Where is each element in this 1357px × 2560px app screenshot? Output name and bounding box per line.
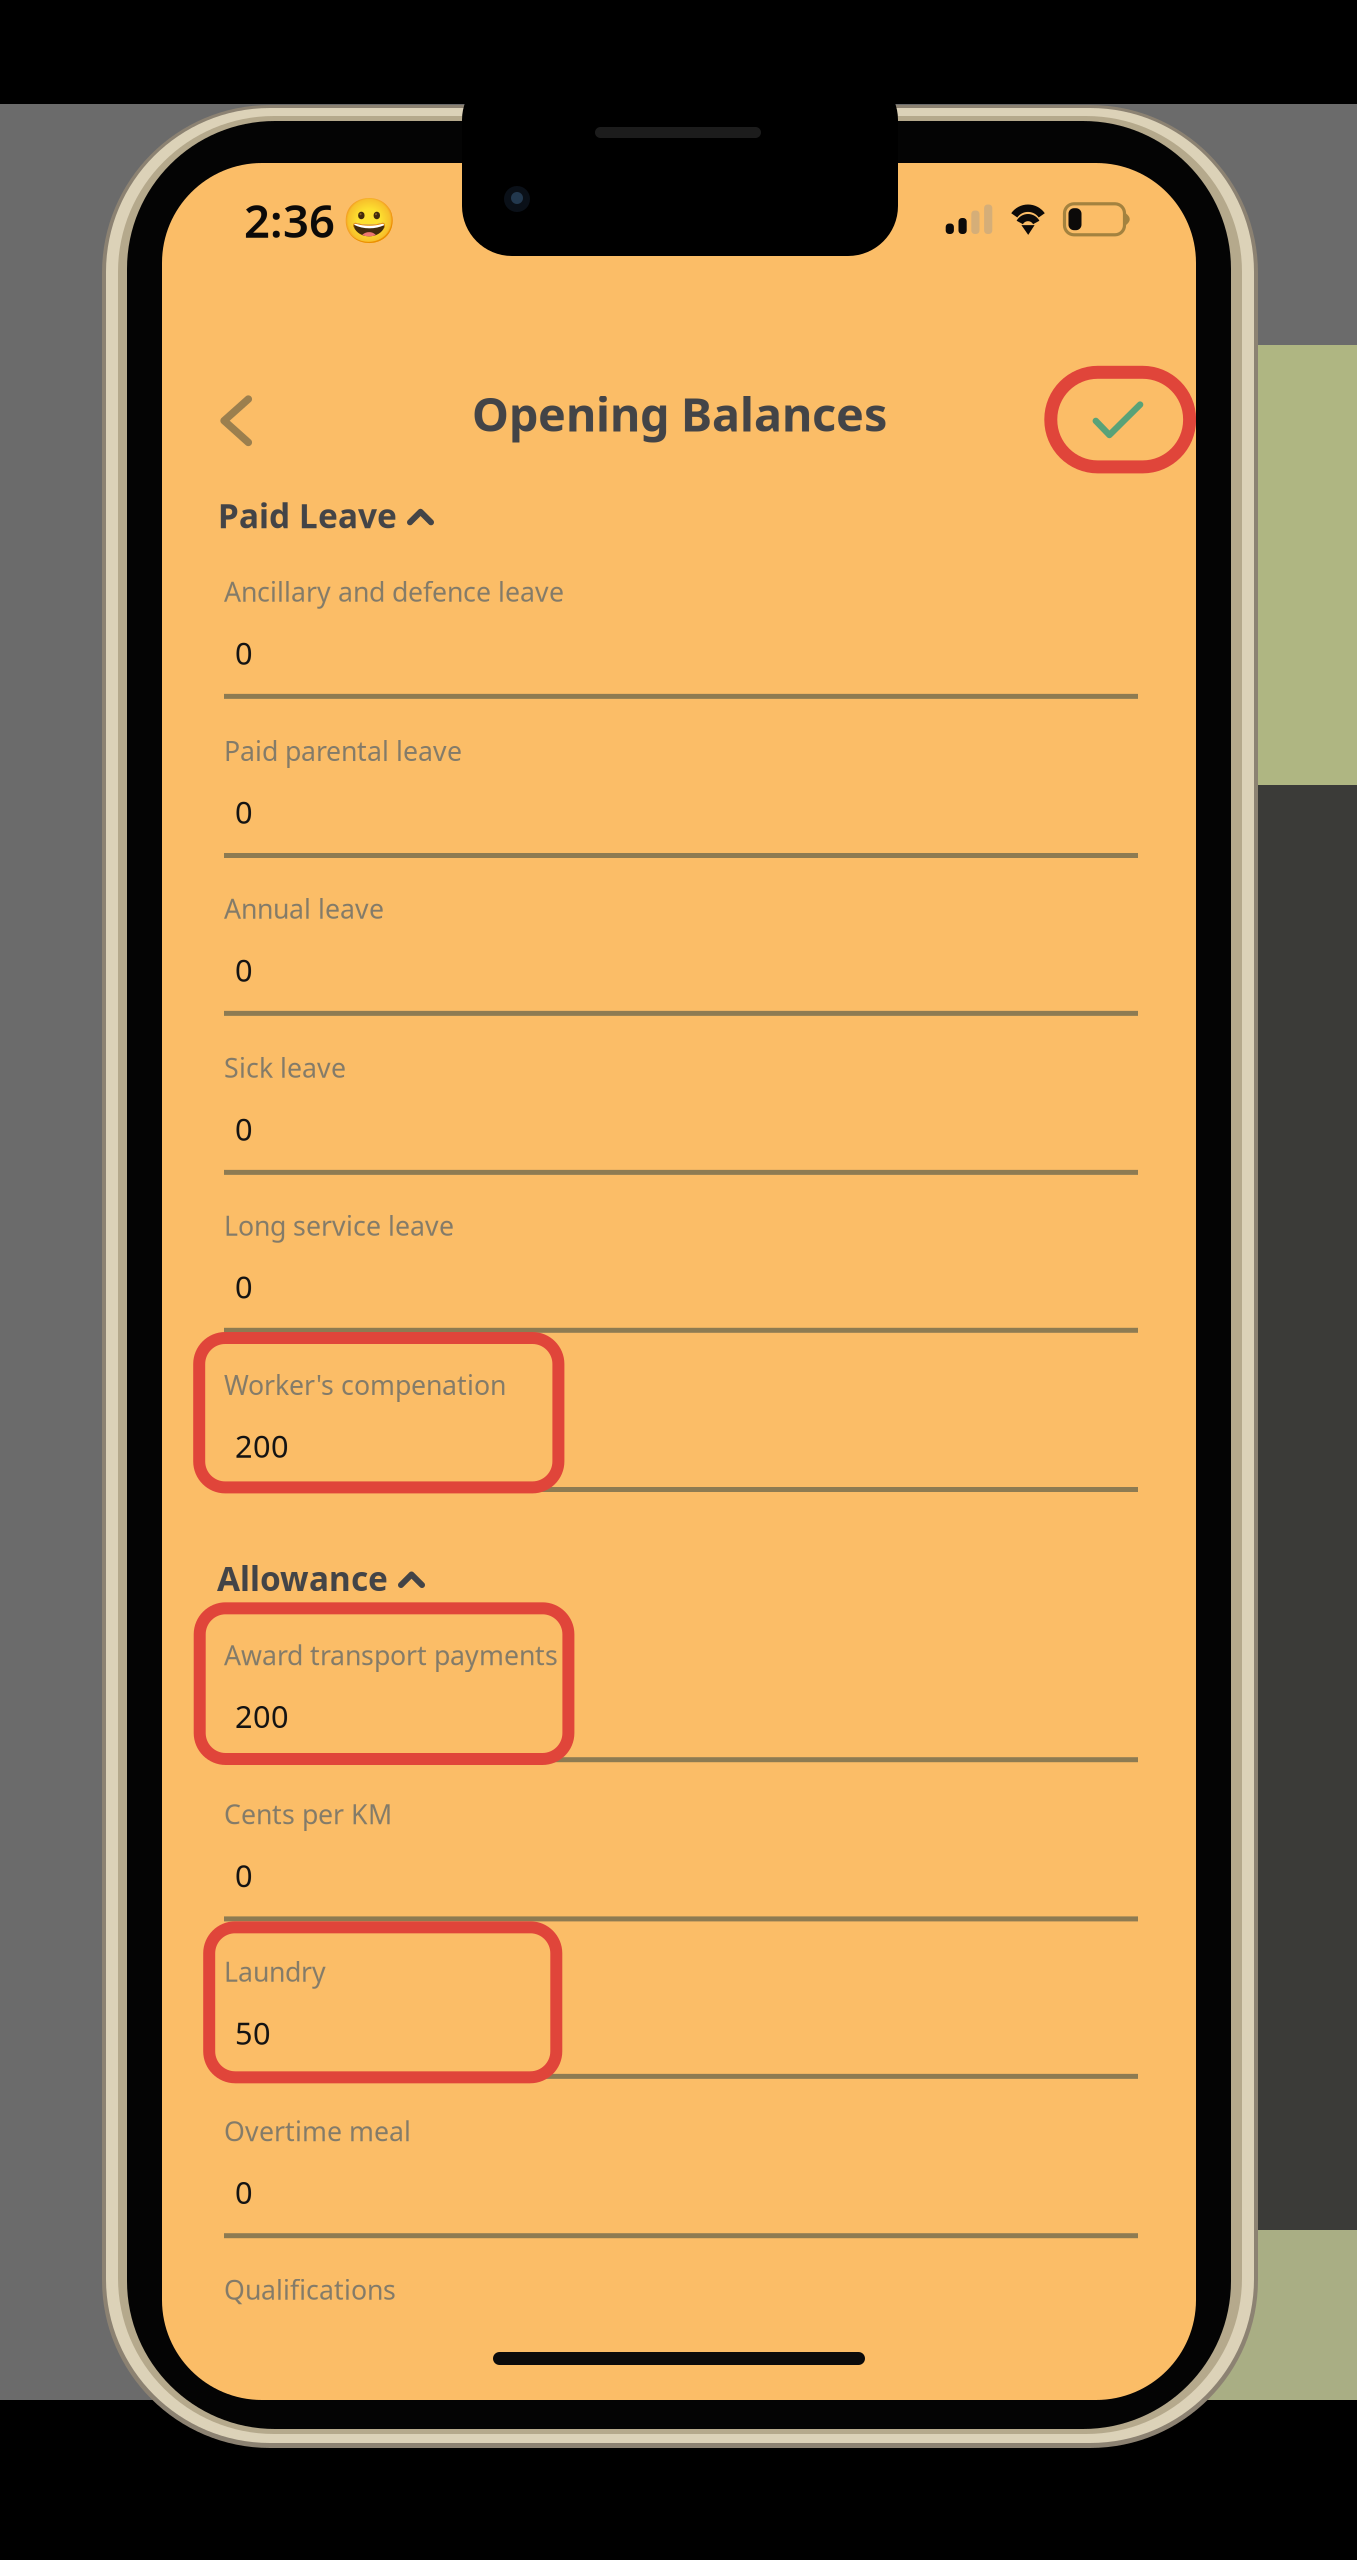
staticText: 50 [235, 2012, 271, 2053]
staticText: 200 [235, 1696, 289, 1736]
button[interactable]: Save [1044, 365, 1196, 475]
staticText: 0 [235, 1855, 253, 1896]
button[interactable]: Laundry [224, 1918, 1138, 2076]
staticText: Allowance [217, 1556, 388, 1600]
button[interactable]: Annual leave [224, 855, 1138, 1013]
button[interactable]: Award transport payments [224, 1601, 1138, 1760]
button[interactable]: Ancillary and defence leave [224, 538, 1138, 696]
button[interactable]: Overtime meal [224, 2077, 1138, 2236]
staticText: 0 [235, 632, 253, 673]
staticText: Sick leave [224, 1050, 346, 1085]
button[interactable]: Allowance [217, 1556, 425, 1600]
button[interactable]: Cents per KM [224, 1760, 1138, 1919]
staticText: 2:36 [244, 190, 335, 250]
button[interactable]: Paid parental leave [224, 697, 1138, 855]
staticText: Paid Leave [218, 493, 397, 538]
staticText: 😀 [342, 196, 397, 246]
button[interactable]: Back [220, 370, 324, 474]
staticText: Worker's compenation [224, 1367, 506, 1402]
staticText: Award transport payments [224, 1637, 558, 1672]
staticText: 0 [235, 1108, 253, 1149]
staticText: 0 [235, 1266, 253, 1307]
button[interactable]: Worker's compenation [224, 1331, 1138, 1489]
staticText: Paid parental leave [224, 733, 462, 768]
button[interactable]: Long service leave [224, 1172, 1138, 1330]
staticText: Qualifications [224, 2272, 396, 2307]
button[interactable]: Sick leave [224, 1014, 1138, 1172]
staticText: Overtime meal [224, 2113, 411, 2148]
staticText: Laundry [224, 1954, 326, 1989]
staticText: 0 [235, 2172, 253, 2212]
button[interactable]: Paid Leave [218, 493, 434, 538]
staticText: Annual leave [224, 891, 384, 926]
staticText: Ancillary and defence leave [224, 574, 564, 609]
staticText: Long service leave [224, 1208, 454, 1243]
staticText: Cents per KM [224, 1796, 392, 1832]
staticText: Opening Balances [472, 382, 887, 444]
staticText: 0 [235, 949, 253, 990]
staticText: 0 [235, 791, 253, 832]
staticText: 200 [235, 1425, 289, 1466]
